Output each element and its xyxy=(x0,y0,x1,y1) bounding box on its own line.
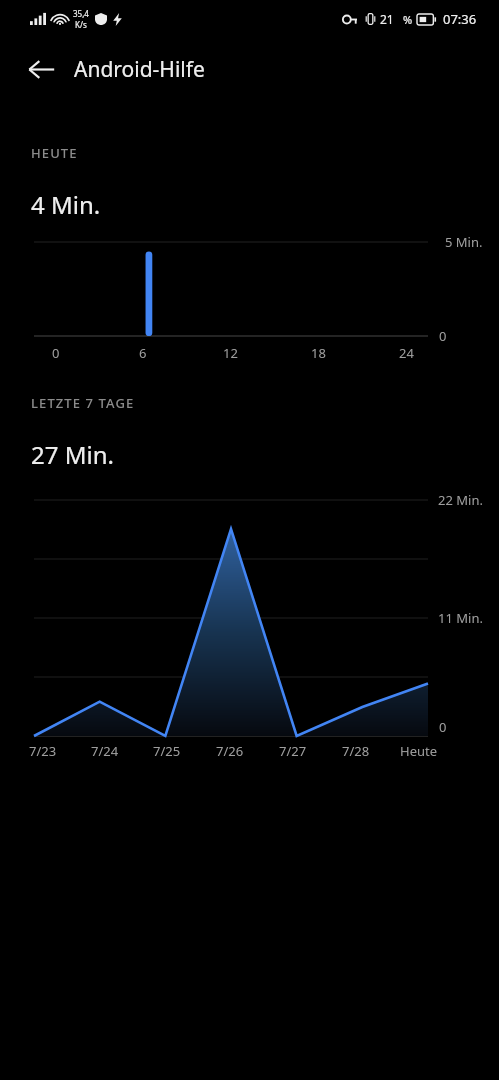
staticText: 7/23 xyxy=(29,742,57,760)
staticText: 18 xyxy=(311,344,326,362)
staticText: 22 Min. xyxy=(438,491,483,509)
staticText: 27 Min. xyxy=(31,438,114,471)
staticText: 7/25 xyxy=(153,742,181,760)
staticText: Android-Hilfe xyxy=(74,55,205,84)
staticText: 0 xyxy=(439,718,447,736)
staticText: 07:36 xyxy=(443,10,477,28)
staticText: HEUTE xyxy=(31,144,78,162)
staticText: Heute xyxy=(400,742,438,760)
staticText: % xyxy=(403,12,413,27)
staticText: 12 xyxy=(223,344,238,362)
button[interactable]: Zurück xyxy=(16,44,66,94)
staticText: 7/27 xyxy=(279,742,307,760)
staticText: 4 Min. xyxy=(31,188,101,221)
staticText: 21 xyxy=(380,11,394,27)
staticText: 7/26 xyxy=(216,742,244,760)
staticText: 7/24 xyxy=(91,742,119,760)
staticText: LETZTE 7 TAGE xyxy=(31,394,135,412)
staticText: 0 xyxy=(52,344,60,362)
staticText: 6 xyxy=(139,344,147,362)
staticText: 7/28 xyxy=(342,742,370,760)
staticText: 35,4 xyxy=(73,8,89,19)
staticText: 5 Min. xyxy=(445,233,483,251)
staticText: K/s xyxy=(75,19,87,30)
staticText: 11 Min. xyxy=(438,609,483,627)
staticText: 24 xyxy=(399,344,414,362)
staticText: 0 xyxy=(439,327,447,345)
